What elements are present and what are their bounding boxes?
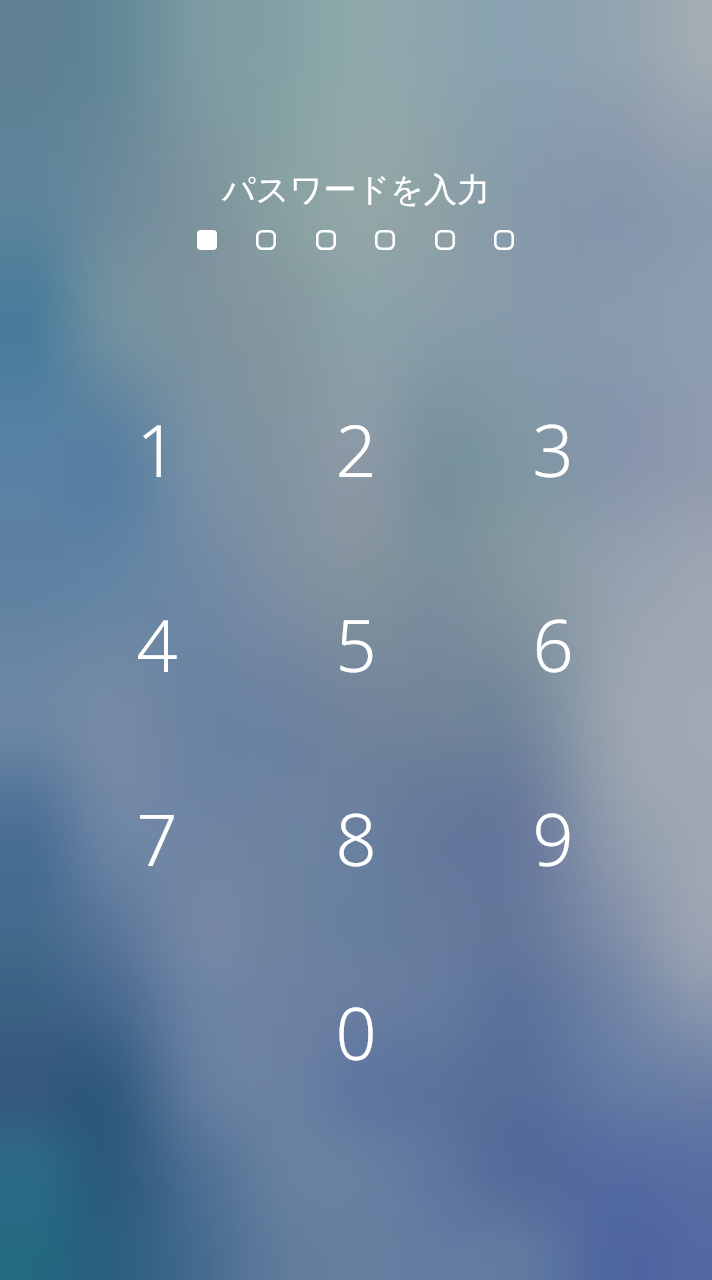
staticText: 0	[335, 983, 377, 1081]
staticText: 2	[335, 400, 377, 498]
button[interactable]: 5	[281, 584, 431, 704]
button[interactable]: 4	[82, 584, 232, 704]
button[interactable]: 6	[478, 584, 628, 704]
button[interactable]: 9	[478, 778, 628, 898]
button[interactable]: 8	[281, 778, 431, 898]
button[interactable]: 3	[478, 389, 628, 509]
staticText: 9	[532, 789, 574, 887]
staticText: 6	[532, 595, 574, 693]
staticText: 8	[335, 789, 377, 887]
staticText: 3	[532, 400, 574, 498]
button[interactable]: 0	[281, 972, 431, 1092]
staticText: 5	[335, 595, 377, 693]
button[interactable]: 7	[82, 778, 232, 898]
staticText: 1	[136, 400, 178, 498]
staticText: 4	[136, 595, 178, 693]
button[interactable]: 2	[281, 389, 431, 509]
staticText: パスワードを入力	[222, 169, 490, 211]
staticText: 7	[136, 789, 178, 887]
button[interactable]: 1	[82, 389, 232, 509]
